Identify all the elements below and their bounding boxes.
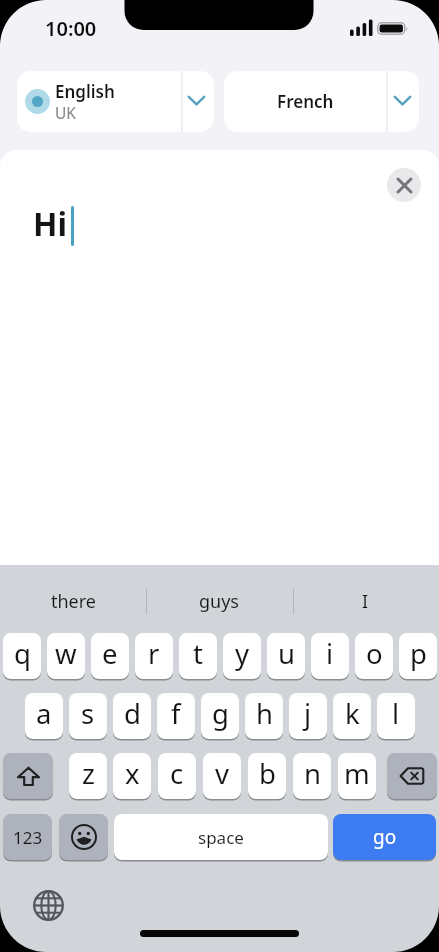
staticText: l — [392, 695, 400, 732]
button[interactable] — [59, 814, 108, 860]
button[interactable]: x — [113, 753, 151, 799]
staticText: s — [81, 695, 95, 732]
button[interactable]: 123 — [3, 814, 52, 860]
button[interactable]: t — [179, 633, 217, 679]
staticText: f — [171, 695, 181, 732]
staticText: u — [278, 635, 295, 672]
button[interactable]: I — [292, 585, 439, 617]
button[interactable]: space — [114, 814, 328, 860]
button[interactable]: English — [17, 71, 214, 132]
button[interactable]: b — [248, 753, 286, 799]
staticText: g — [212, 695, 229, 732]
staticText: there — [51, 589, 96, 614]
staticText: n — [304, 755, 321, 792]
button[interactable]: f — [157, 693, 195, 739]
staticText: o — [366, 635, 383, 672]
button[interactable]: z — [69, 753, 107, 799]
button[interactable] — [24, 881, 72, 929]
button[interactable]: v — [203, 753, 241, 799]
staticText: I — [362, 589, 369, 614]
button[interactable]: l — [377, 693, 415, 739]
button[interactable]: p — [399, 633, 437, 679]
button[interactable]: there — [0, 585, 146, 617]
staticText: guys — [199, 589, 239, 614]
staticText: p — [410, 635, 427, 672]
button[interactable]: k — [333, 693, 371, 739]
button[interactable]: m — [338, 753, 376, 799]
button[interactable]: d — [113, 693, 151, 739]
button[interactable]: go — [333, 814, 436, 860]
staticText: m — [344, 755, 370, 792]
staticText: v — [215, 755, 229, 792]
staticText: 10:00 — [45, 15, 97, 42]
staticText: z — [82, 755, 95, 792]
staticText: a — [36, 695, 52, 732]
staticText: j — [304, 695, 312, 732]
staticText: go — [373, 824, 397, 850]
staticText: h — [256, 695, 273, 732]
staticText: 123 — [13, 826, 43, 849]
staticText: UK — [55, 102, 76, 123]
staticText: i — [326, 635, 334, 672]
staticText: b — [259, 755, 276, 792]
button[interactable]: e — [91, 633, 129, 679]
staticText: x — [125, 755, 140, 792]
staticText: q — [14, 635, 31, 672]
staticText: space — [198, 826, 244, 849]
staticText: c — [170, 755, 184, 792]
staticText: k — [345, 695, 360, 732]
staticText: w — [55, 635, 77, 672]
button[interactable] — [387, 753, 437, 799]
button[interactable]: French — [224, 71, 419, 132]
button[interactable]: guys — [146, 585, 292, 617]
staticText: r — [148, 635, 160, 672]
staticText: Hi — [33, 202, 68, 246]
staticText: t — [193, 635, 203, 672]
button[interactable] — [387, 168, 421, 202]
button[interactable]: h — [245, 693, 283, 739]
button[interactable]: w — [47, 633, 85, 679]
staticText: d — [124, 695, 141, 732]
button[interactable]: n — [293, 753, 331, 799]
button[interactable] — [3, 753, 53, 799]
button[interactable]: r — [135, 633, 173, 679]
button[interactable]: u — [267, 633, 305, 679]
button[interactable]: s — [69, 693, 107, 739]
staticText: e — [102, 635, 118, 672]
staticText: English — [55, 80, 115, 103]
button[interactable]: c — [158, 753, 196, 799]
button[interactable]: a — [25, 693, 63, 739]
staticText: French — [277, 90, 334, 113]
button[interactable]: y — [223, 633, 261, 679]
button[interactable]: i — [311, 633, 349, 679]
staticText: y — [235, 635, 250, 672]
button[interactable]: g — [201, 693, 239, 739]
button[interactable]: o — [355, 633, 393, 679]
button[interactable]: q — [3, 633, 41, 679]
button[interactable]: j — [289, 693, 327, 739]
